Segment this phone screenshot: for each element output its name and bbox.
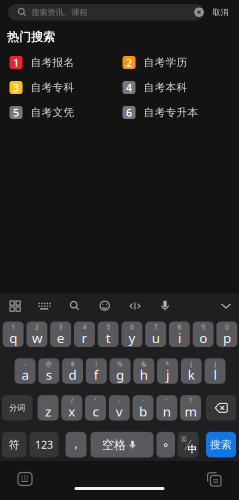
staticText: 自考本科	[143, 81, 187, 94]
button[interactable]: -	[15, 358, 35, 384]
button[interactable]: 分词	[2, 395, 32, 421]
staticText: 2	[35, 323, 39, 331]
staticText: i	[178, 329, 181, 347]
staticText: 英	[180, 435, 187, 443]
button[interactable]: 2	[122, 55, 222, 69]
staticText: (	[190, 359, 192, 368]
staticText: 自考学历	[143, 56, 187, 69]
staticText: 8	[177, 323, 181, 331]
button[interactable]: 剪贴板	[207, 472, 221, 486]
button[interactable]: 1	[3, 321, 24, 347]
staticText: e	[57, 329, 65, 347]
staticText: ·	[142, 396, 144, 405]
staticText: -	[118, 396, 120, 405]
button[interactable]: 4	[74, 321, 95, 347]
staticText: o	[199, 329, 207, 347]
staticText: n	[163, 402, 171, 420]
button[interactable]: 键盘	[38, 301, 52, 311]
staticText: 自考文凭	[30, 106, 74, 119]
button[interactable]: 7	[145, 321, 166, 347]
staticText: 5	[106, 323, 110, 331]
staticText: r	[81, 329, 87, 347]
staticText: 1	[11, 323, 15, 331]
button[interactable]: '	[85, 395, 106, 421]
staticText: l	[213, 366, 216, 383]
button[interactable]: 表情	[99, 300, 111, 312]
button[interactable]: 6	[121, 321, 142, 347]
staticText: 分词	[9, 403, 25, 413]
button[interactable]: 逗号	[65, 432, 86, 457]
button[interactable]: '	[156, 395, 177, 421]
button[interactable]: 符	[2, 432, 26, 457]
staticText: y	[128, 329, 135, 347]
staticText: 空格	[102, 437, 126, 452]
staticText: 123	[35, 438, 53, 452]
staticText: 1	[13, 55, 19, 70]
button[interactable]: 3	[9, 80, 109, 94]
staticText: 自考专科	[30, 81, 74, 94]
button[interactable]: !	[86, 358, 107, 384]
button[interactable]: ·	[133, 395, 153, 421]
staticText: v	[116, 402, 123, 420]
staticText: '	[166, 396, 168, 405]
button[interactable]: &	[133, 358, 154, 384]
button[interactable]: 8	[169, 321, 190, 347]
button[interactable]: 搜索	[69, 300, 81, 312]
staticText: m	[184, 402, 196, 420]
button[interactable]: 6	[122, 105, 222, 119]
button[interactable]: @	[38, 358, 59, 384]
button[interactable]: 9	[193, 321, 214, 347]
button[interactable]: #	[62, 358, 83, 384]
button[interactable]: 句号	[156, 432, 175, 457]
button[interactable]: 0	[216, 321, 237, 347]
staticText: d	[68, 366, 76, 383]
button[interactable]: 123	[29, 432, 58, 457]
button[interactable]: 1	[9, 55, 109, 69]
staticText: s	[46, 366, 52, 383]
button[interactable]: 空格	[90, 432, 153, 457]
button[interactable]: 中/英	[177, 432, 198, 457]
button[interactable]: 更多	[9, 300, 21, 312]
staticText: )	[214, 359, 216, 368]
button[interactable]: /	[61, 395, 82, 421]
staticText: u	[152, 329, 160, 347]
staticText: 9	[201, 323, 205, 331]
button[interactable]: )	[205, 358, 225, 384]
button[interactable]: 3	[50, 321, 71, 347]
staticText: ?	[189, 396, 192, 405]
button[interactable]: 5	[98, 321, 119, 347]
staticText: 中	[187, 444, 196, 455]
staticText: a	[21, 366, 28, 383]
button[interactable]: 删除	[206, 395, 236, 421]
button[interactable]: 4	[122, 80, 222, 94]
staticText: x	[68, 402, 75, 420]
staticText: z	[45, 402, 51, 420]
button[interactable]: 光标	[129, 300, 141, 312]
button[interactable]: 收起键盘	[220, 302, 231, 310]
button[interactable]: (	[181, 358, 202, 384]
button[interactable]: 搜索资讯、课程	[8, 4, 204, 20]
button[interactable]: 5	[9, 105, 109, 119]
staticText: h	[140, 366, 148, 383]
button[interactable]: 搜索	[206, 432, 236, 457]
staticText: 4	[82, 323, 86, 331]
staticText: *	[165, 359, 169, 368]
button[interactable]: *	[157, 358, 178, 384]
staticText: 2	[126, 55, 132, 70]
staticText: -	[24, 359, 26, 368]
button[interactable]: 2	[26, 321, 47, 347]
button[interactable]: 清除	[194, 7, 204, 17]
button[interactable]: .	[38, 395, 58, 421]
staticText: 符	[9, 438, 20, 451]
staticText: 3	[13, 80, 19, 95]
staticText: j	[166, 366, 169, 383]
button[interactable]: 语音	[159, 300, 171, 312]
staticText: 热门搜索	[7, 30, 55, 44]
button[interactable]: ?	[180, 395, 201, 421]
staticText: #	[70, 359, 74, 368]
button[interactable]: 取消	[205, 4, 235, 20]
button[interactable]: %	[110, 358, 130, 384]
button[interactable]: -	[109, 395, 130, 421]
staticText: 6	[130, 323, 134, 331]
button[interactable]: 切换键盘	[18, 472, 32, 485]
